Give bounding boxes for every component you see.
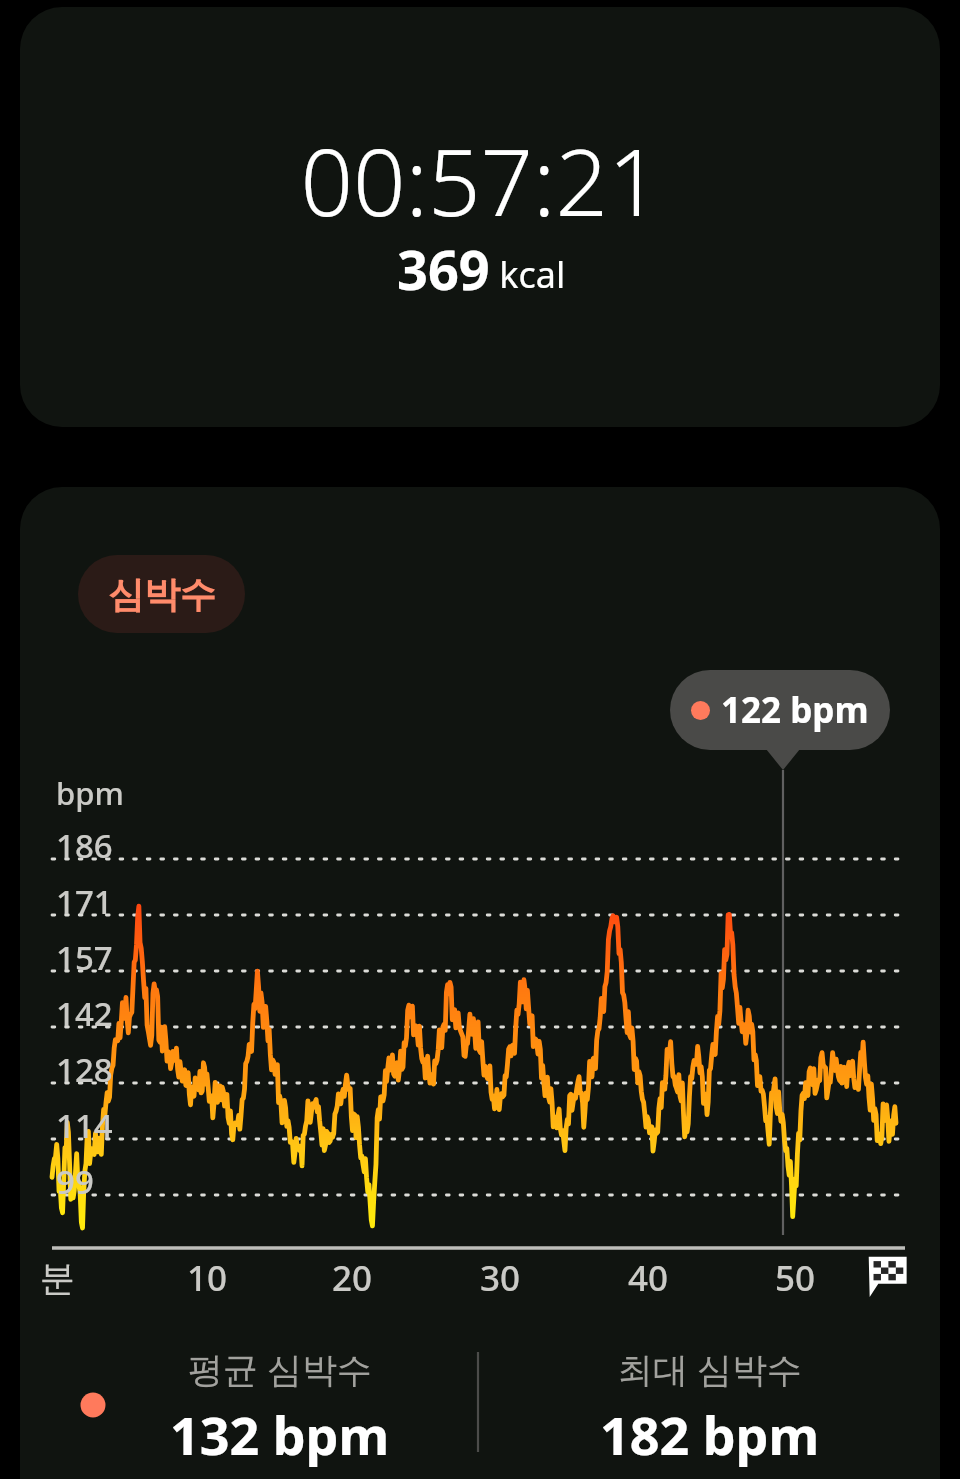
staticText: 157 (56, 935, 113, 980)
button[interactable]: 평균 심박수 (130, 1345, 430, 1469)
staticText: 182 bpm (600, 1399, 820, 1467)
staticText: 99 (56, 1159, 94, 1204)
staticText: kcal (490, 250, 566, 299)
button[interactable]: Finish lap marker (862, 1252, 910, 1300)
staticText: 171 (56, 879, 113, 924)
staticText: 186 (56, 823, 113, 868)
staticText: 132 bpm (170, 1399, 390, 1467)
staticText: 142 (56, 991, 113, 1036)
staticText: 50 (775, 1254, 816, 1302)
staticText: 00:57:21 (300, 118, 661, 234)
staticText: 최대 심박수 (618, 1345, 803, 1393)
staticText: 평균 심박수 (188, 1345, 373, 1393)
staticText: 심박수 (108, 572, 216, 617)
staticText: 10 (187, 1254, 228, 1302)
staticText: 369 (397, 232, 490, 302)
staticText: 20 (332, 1254, 373, 1302)
staticText: 114 (56, 1103, 113, 1148)
button[interactable]: 122 bpm (670, 670, 890, 750)
button[interactable]: 최대 심박수 (560, 1345, 860, 1469)
staticText: 128 (56, 1047, 113, 1092)
staticText: bpm (56, 772, 124, 814)
staticText: 분 (40, 1256, 75, 1300)
staticText: 122 bpm (721, 686, 869, 734)
button[interactable]: 심박수 (78, 555, 245, 633)
staticText: 40 (628, 1254, 669, 1302)
staticText: 30 (480, 1254, 521, 1302)
